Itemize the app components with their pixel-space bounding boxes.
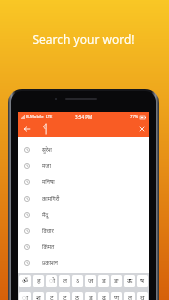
button[interactable]: ट — [59, 292, 70, 300]
button[interactable]: Clear — [136, 123, 148, 135]
staticText: ष — [140, 276, 145, 286]
staticText: कामगिरी — [42, 195, 60, 203]
button[interactable]: ऽ — [72, 275, 83, 287]
staticText: मनिषा — [42, 178, 55, 186]
staticText: मजा — [42, 162, 51, 170]
staticText: ह — [37, 276, 41, 286]
staticText: ड — [102, 276, 106, 286]
button[interactable]: मजा — [18, 158, 149, 174]
staticText: B-Mobile LTE — [26, 114, 53, 120]
button[interactable]: ट — [46, 292, 57, 300]
button[interactable]: किंमत — [18, 239, 149, 255]
staticText: मेंदू — [42, 211, 49, 219]
staticText: प्रकाशन — [42, 259, 58, 267]
button[interactable]: ड — [85, 292, 96, 300]
staticText: किंमत — [42, 243, 55, 251]
button[interactable]: ड — [98, 275, 109, 287]
button[interactable]: ज — [85, 275, 96, 287]
button[interactable]: ण — [111, 292, 122, 300]
staticText: ङ — [114, 276, 119, 286]
button[interactable]: ॐ — [19, 275, 31, 287]
staticText: ऊ — [127, 276, 133, 286]
staticText: त — [63, 276, 67, 286]
button[interactable]: Back — [20, 122, 34, 136]
button[interactable]: विचार — [18, 223, 149, 239]
staticText: ट — [63, 293, 67, 300]
staticText: विचार — [42, 227, 54, 235]
staticText: 77% — [130, 114, 139, 120]
staticText: ा — [22, 293, 28, 300]
button[interactable]: ो — [46, 275, 57, 287]
staticText: Search your word! — [0, 31, 168, 47]
staticText: सुरेश — [42, 146, 52, 154]
staticText: थ — [140, 293, 145, 300]
button[interactable]: थ — [137, 292, 148, 300]
button[interactable]: ङ — [111, 275, 122, 287]
staticText: ट — [50, 293, 54, 300]
button[interactable]: श — [33, 292, 44, 300]
staticText: श — [36, 293, 41, 300]
button[interactable]: ऊ — [124, 275, 135, 287]
staticText: 3:54 PM — [75, 114, 93, 120]
button[interactable]: कामगिरी — [18, 191, 149, 207]
button[interactable]: ह — [33, 275, 44, 287]
button[interactable]: प्रकाशन — [18, 255, 149, 271]
staticText: ढ — [102, 293, 106, 300]
staticText: ो — [49, 276, 55, 286]
button[interactable]: ठ — [72, 292, 83, 300]
staticText: त — [128, 293, 132, 300]
staticText: ज — [88, 276, 94, 286]
staticText: ॐ — [22, 276, 29, 286]
button[interactable]: ा — [19, 292, 31, 300]
button[interactable]: मेंदू — [18, 207, 149, 223]
button[interactable]: सुरेश — [18, 142, 149, 158]
button[interactable]: ष — [137, 275, 148, 287]
button[interactable]: मनिषा — [18, 174, 149, 190]
button[interactable]: ढ — [98, 292, 109, 300]
staticText: ड — [89, 293, 93, 300]
button[interactable]: त — [59, 275, 70, 287]
staticText: ठ — [75, 293, 80, 300]
staticText: ण — [114, 293, 120, 300]
button[interactable]: त — [124, 292, 135, 300]
staticText: ऽ — [76, 276, 80, 286]
